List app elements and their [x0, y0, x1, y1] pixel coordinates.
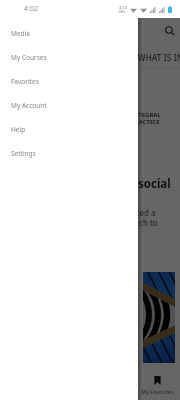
button[interactable]: My Courses — [0, 45, 138, 69]
staticText: WHAT IS INTEGRAL LIFE PRACTICE? — [138, 52, 180, 63]
staticText: Favorites — [11, 77, 39, 86]
staticText: INTEGRAL PRACTICE — [131, 111, 161, 126]
button[interactable]: My Favorites — [135, 364, 180, 400]
staticText: 4.02 — [119, 5, 127, 10]
staticText: My Courses — [11, 53, 47, 62]
button[interactable]: My Account — [0, 93, 138, 117]
button[interactable]: Search — [160, 21, 180, 41]
staticText: Settings — [11, 149, 36, 158]
staticText: My Account — [11, 101, 47, 110]
staticText: social — [138, 176, 171, 192]
staticText: KB/s — [119, 10, 126, 14]
staticText: Lorem ipsum dolor has posted a new topic… — [34, 207, 158, 228]
button[interactable]: Settings — [0, 141, 138, 165]
staticText: My Favorites — [141, 388, 174, 395]
staticText: Help — [11, 125, 26, 134]
button[interactable]: Media — [0, 21, 138, 45]
button[interactable]: Favorites — [0, 69, 138, 93]
button[interactable]: Help — [0, 117, 138, 141]
staticText: Media — [11, 29, 30, 38]
staticText: 4:02 — [24, 4, 38, 14]
